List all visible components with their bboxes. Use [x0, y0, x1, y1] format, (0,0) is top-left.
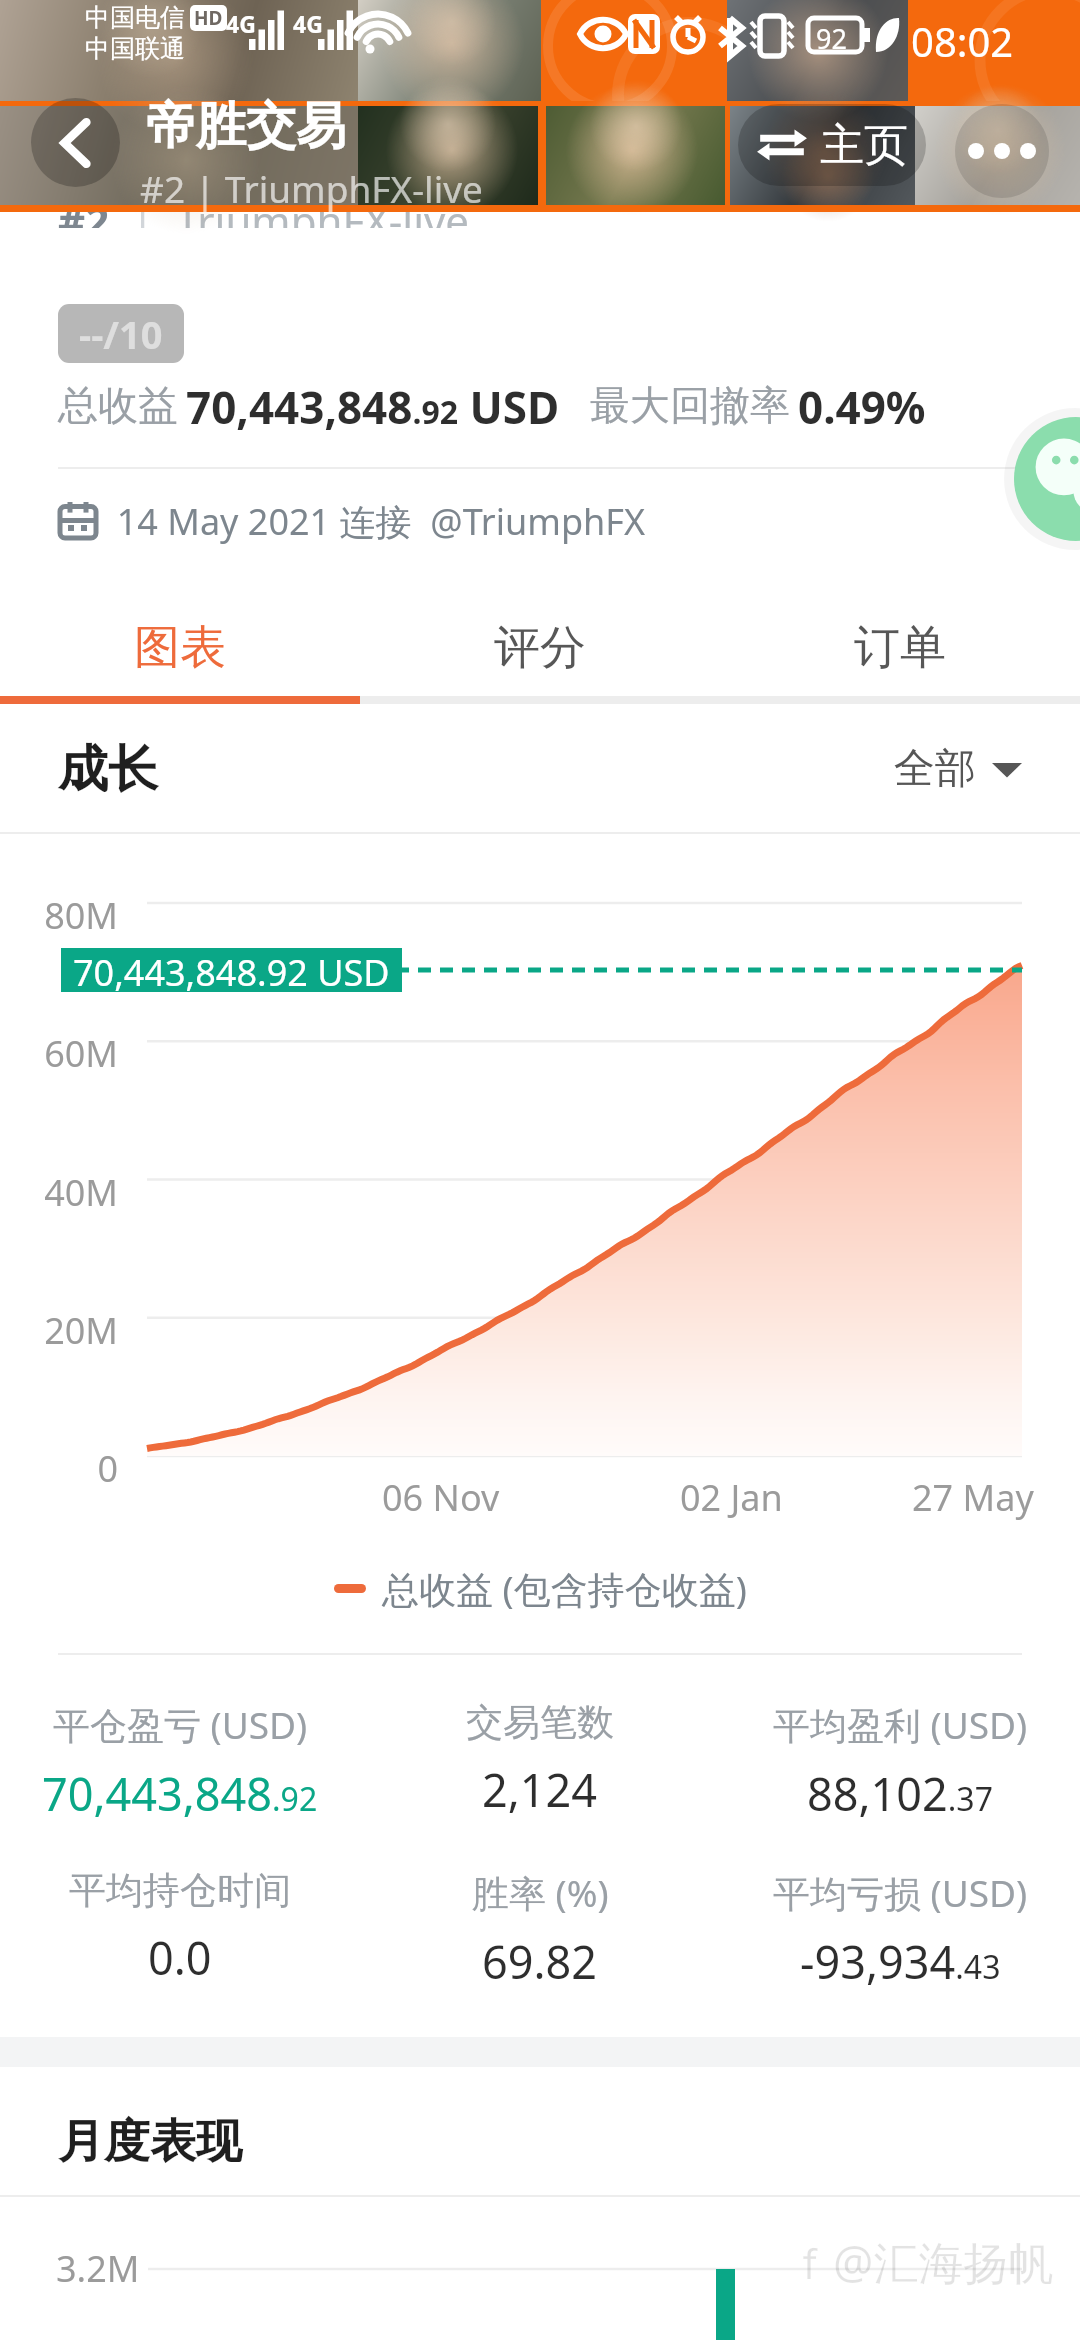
staticText: -93,934.43	[800, 1931, 1001, 1992]
staticText: 27 May	[912, 1473, 1034, 1522]
staticText: 最大回撤率	[590, 380, 790, 430]
staticText: #2 | TriumphFX-live	[140, 163, 483, 213]
staticText: #2 | TriumphFX-live	[58, 192, 470, 228]
staticText: 80M	[0, 891, 118, 940]
staticText: 70,443,848.92 USD	[73, 948, 390, 992]
button[interactable]: Back	[31, 98, 120, 187]
staticText: 70,443,848.92 USD	[186, 377, 560, 433]
button[interactable]: 评分	[360, 600, 720, 696]
staticText: 0.49%	[798, 377, 926, 433]
staticText: 帝胜交易	[146, 95, 346, 158]
staticText: 全部	[894, 743, 976, 795]
staticText: 平均盈利 (USD)	[773, 1699, 1028, 1750]
staticText: 02 Jan	[680, 1473, 783, 1522]
staticText: 0	[0, 1444, 118, 1493]
staticText: --/10	[79, 308, 163, 360]
staticText: 4G	[226, 8, 256, 39]
button[interactable]: 图表	[0, 600, 360, 696]
staticText: 88,102.37	[807, 1763, 993, 1824]
staticText: HD	[194, 5, 223, 31]
button[interactable]: 全部	[894, 743, 1022, 795]
button[interactable]: 订单	[720, 600, 1080, 696]
staticText: 2,124	[482, 1759, 598, 1820]
staticText: 平均持仓时间	[69, 1867, 291, 1914]
staticText: 月度表现	[58, 2113, 242, 2171]
staticText: 08:02	[911, 14, 1014, 68]
staticText: ｆ@汇海扬帆	[788, 2231, 1054, 2292]
staticText: 主页	[820, 118, 908, 173]
staticText: 交易笔数	[466, 1699, 614, 1746]
staticText: 4G	[293, 8, 323, 39]
staticText: 06 Nov	[382, 1473, 500, 1522]
staticText: 中国电信	[85, 2, 185, 33]
button[interactable]: More options	[955, 104, 1049, 198]
button[interactable]: WeChat	[1014, 417, 1080, 541]
staticText: 14 May 2021 连接 @TriumphFX	[98, 497, 646, 546]
staticText: 成长	[58, 738, 158, 801]
staticText: 0.0	[148, 1927, 212, 1988]
staticText: 20M	[0, 1306, 118, 1355]
staticText: 胜率 (%)	[472, 1867, 609, 1918]
staticText: 60M	[0, 1029, 118, 1078]
staticText: 92	[816, 20, 847, 57]
staticText: 总收益	[58, 380, 178, 430]
staticText: 订单	[854, 619, 946, 677]
staticText: 平仓盈亏 (USD)	[53, 1699, 308, 1750]
staticText: 70,443,848.92	[42, 1763, 318, 1824]
staticText: 平均亏损 (USD)	[773, 1867, 1028, 1918]
staticText: 中国联通	[85, 33, 185, 64]
staticText: 3.2M	[56, 2244, 140, 2293]
staticText: 69.82	[482, 1931, 598, 1992]
staticText: 40M	[0, 1168, 118, 1217]
staticText: 图表	[134, 619, 226, 677]
staticText: 评分	[494, 619, 586, 677]
staticText: 总收益 (包含持仓收益)	[382, 1563, 747, 1614]
button[interactable]: 主页	[756, 104, 908, 186]
